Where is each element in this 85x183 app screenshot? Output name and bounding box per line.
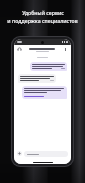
button[interactable]: Профиль поддержки <box>17 47 22 52</box>
button[interactable] <box>24 151 68 157</box>
button[interactable] <box>18 74 56 83</box>
button[interactable] <box>30 62 67 71</box>
button[interactable]: Меню <box>63 47 68 52</box>
staticText: и поддержка специалистов <box>7 17 78 24</box>
staticText: Удобный сервис <box>22 9 64 16</box>
button[interactable]: Прикрепить файл <box>17 151 22 156</box>
button[interactable] <box>22 86 67 99</box>
